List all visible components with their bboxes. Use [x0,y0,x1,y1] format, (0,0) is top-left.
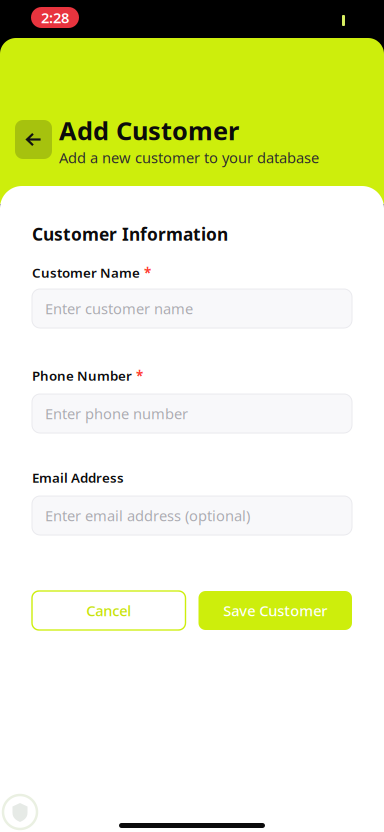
staticText: Add a new customer to your database [59,148,319,167]
staticText: * [144,264,151,281]
staticText: Enter email address (optional) [45,506,250,525]
staticText: Save Customer [223,601,327,620]
staticText: Cancel [86,601,131,620]
staticText: * [136,367,143,384]
button[interactable]: Cancel [32,591,185,630]
staticText: Phone Number [32,367,132,384]
staticText: 2:28 [41,8,69,27]
button[interactable]: Back [15,120,52,159]
staticText: Email Address [32,469,124,486]
staticText: Add Customer [59,114,239,147]
staticText: Customer Name [32,264,140,281]
staticText: Customer Information [32,222,228,245]
staticText: Enter customer name [45,299,193,318]
staticText: Enter phone number [45,404,188,423]
button[interactable]: Save Customer [198,591,352,630]
